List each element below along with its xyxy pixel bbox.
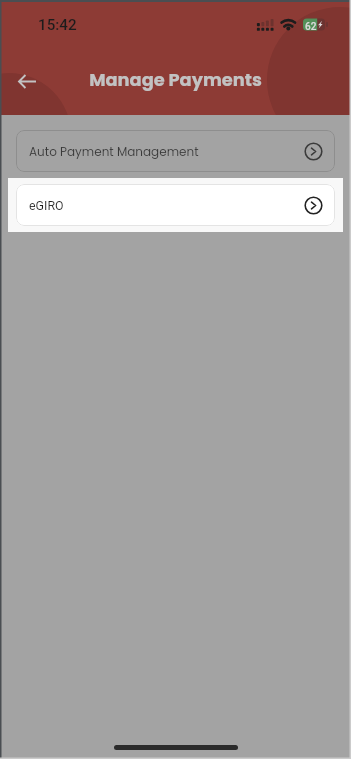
staticText: Auto Payment Management [29,143,199,160]
button[interactable]: Auto Payment Management [16,130,335,172]
staticText: 62 [305,21,317,33]
staticText: eGIRO [29,198,64,213]
button[interactable]: Back [11,65,43,97]
button[interactable]: eGIRO [16,184,335,226]
staticText: Manage Payments [0,67,351,92]
staticText: 15:42 [38,16,77,34]
